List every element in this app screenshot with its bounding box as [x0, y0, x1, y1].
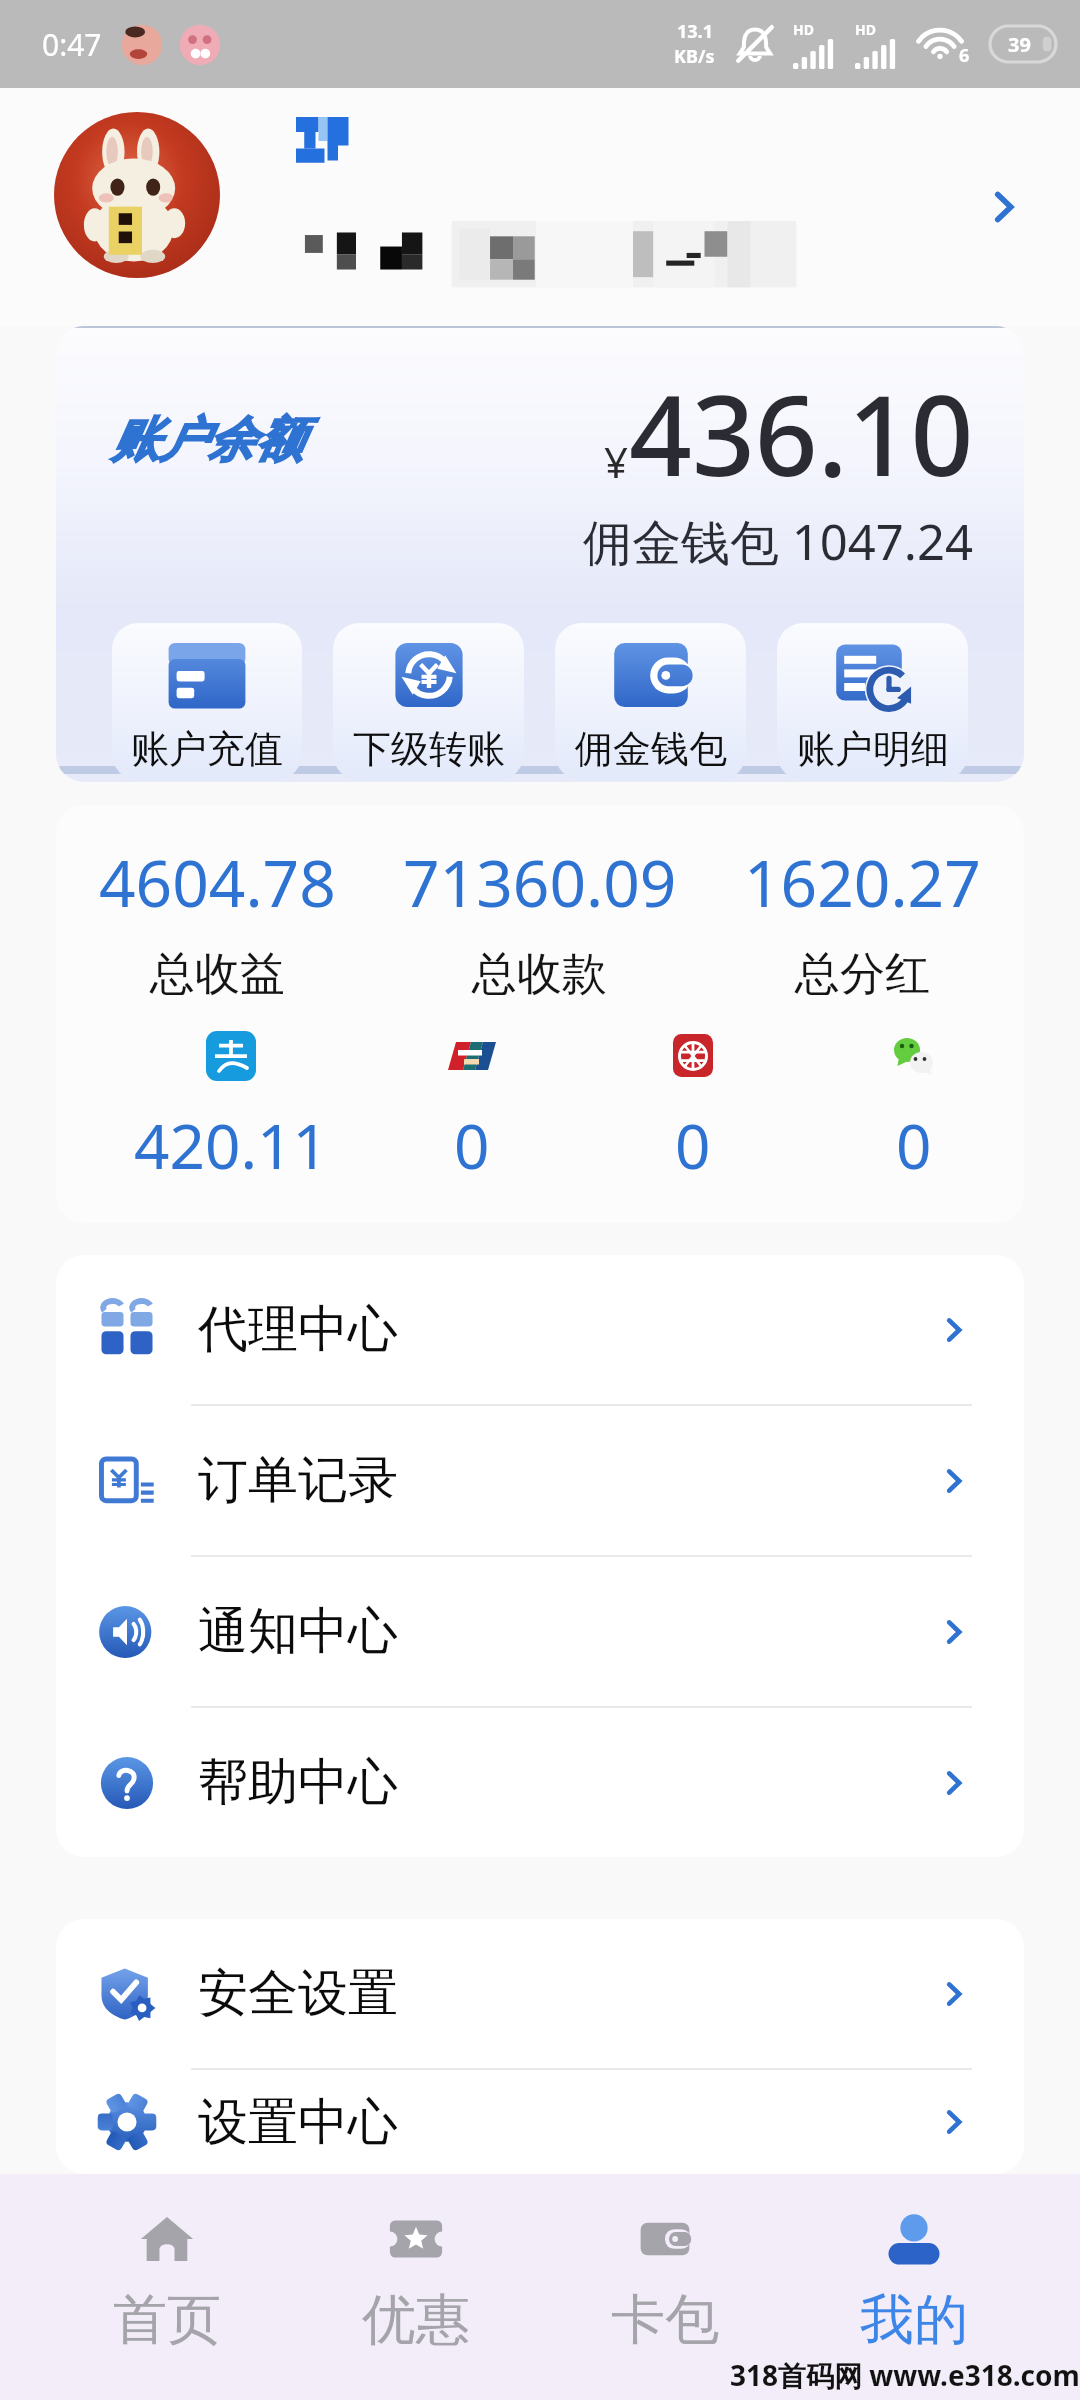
button[interactable]: Profile details: [0, 88, 1080, 326]
staticText: 通知中心: [198, 1600, 398, 1663]
button[interactable]: 设置中心: [56, 2070, 1024, 2174]
staticText: 下级转账: [353, 725, 505, 773]
button[interactable]: 我的: [789, 2174, 1038, 2400]
staticText: 6: [959, 43, 970, 68]
button[interactable]: 卡包: [540, 2174, 789, 2400]
button[interactable]: 账户明细: [777, 623, 968, 780]
button[interactable]: 帮助中心: [56, 1708, 1024, 1857]
staticText: HD: [855, 20, 876, 39]
staticText: 318首码网 www.e318.com: [730, 2356, 1080, 2394]
button[interactable]: 佣金钱包: [555, 623, 746, 780]
staticText: 设置中心: [198, 2091, 398, 2154]
staticText: 卡包: [611, 2286, 719, 2354]
staticText: 优惠: [362, 2286, 470, 2354]
staticText: KB/s: [674, 44, 715, 69]
button[interactable]: 账户充值: [112, 623, 302, 780]
staticText: 71360.09: [403, 839, 677, 926]
button[interactable]: 通知中心: [56, 1557, 1024, 1706]
staticText: HD: [793, 20, 814, 39]
staticText: 436.10: [629, 358, 974, 508]
button[interactable]: 下级转账: [333, 623, 524, 780]
staticText: 安全设置: [198, 1962, 398, 2025]
staticText: 订单记录: [198, 1449, 398, 1512]
staticText: 1620.27: [744, 839, 981, 926]
staticText: 0: [675, 1103, 711, 1187]
staticText: 账户明细: [797, 725, 949, 773]
staticText: 总收款: [472, 946, 607, 1003]
staticText: 4604.78: [99, 839, 336, 926]
staticText: 总分红: [795, 946, 930, 1003]
staticText: 账户余额: [111, 410, 303, 470]
button[interactable]: 安全设置: [56, 1919, 1024, 2068]
staticText: 账户充值: [131, 725, 283, 773]
staticText: 我的: [860, 2286, 968, 2354]
button[interactable]: 优惠: [291, 2174, 540, 2400]
staticText: ¥: [604, 433, 629, 490]
staticText: 代理中心: [198, 1298, 398, 1361]
button[interactable]: 代理中心: [56, 1255, 1024, 1404]
staticText: 420.11: [134, 1103, 328, 1187]
staticText: 佣金钱包: [575, 725, 727, 773]
staticText: 首页: [113, 2286, 221, 2354]
staticText: 0:47: [42, 24, 102, 65]
staticText: 0: [896, 1103, 932, 1187]
staticText: 0: [454, 1103, 490, 1187]
staticText: 总收益: [150, 946, 285, 1003]
button[interactable]: Profile details: [978, 181, 1030, 233]
button[interactable]: 首页: [42, 2174, 291, 2400]
staticText: 佣金钱包 1047.24: [583, 508, 974, 575]
staticText: 13.1: [677, 19, 713, 44]
staticText: 帮助中心: [198, 1751, 398, 1814]
button[interactable]: 订单记录: [56, 1406, 1024, 1555]
staticText: 39: [1008, 31, 1031, 58]
